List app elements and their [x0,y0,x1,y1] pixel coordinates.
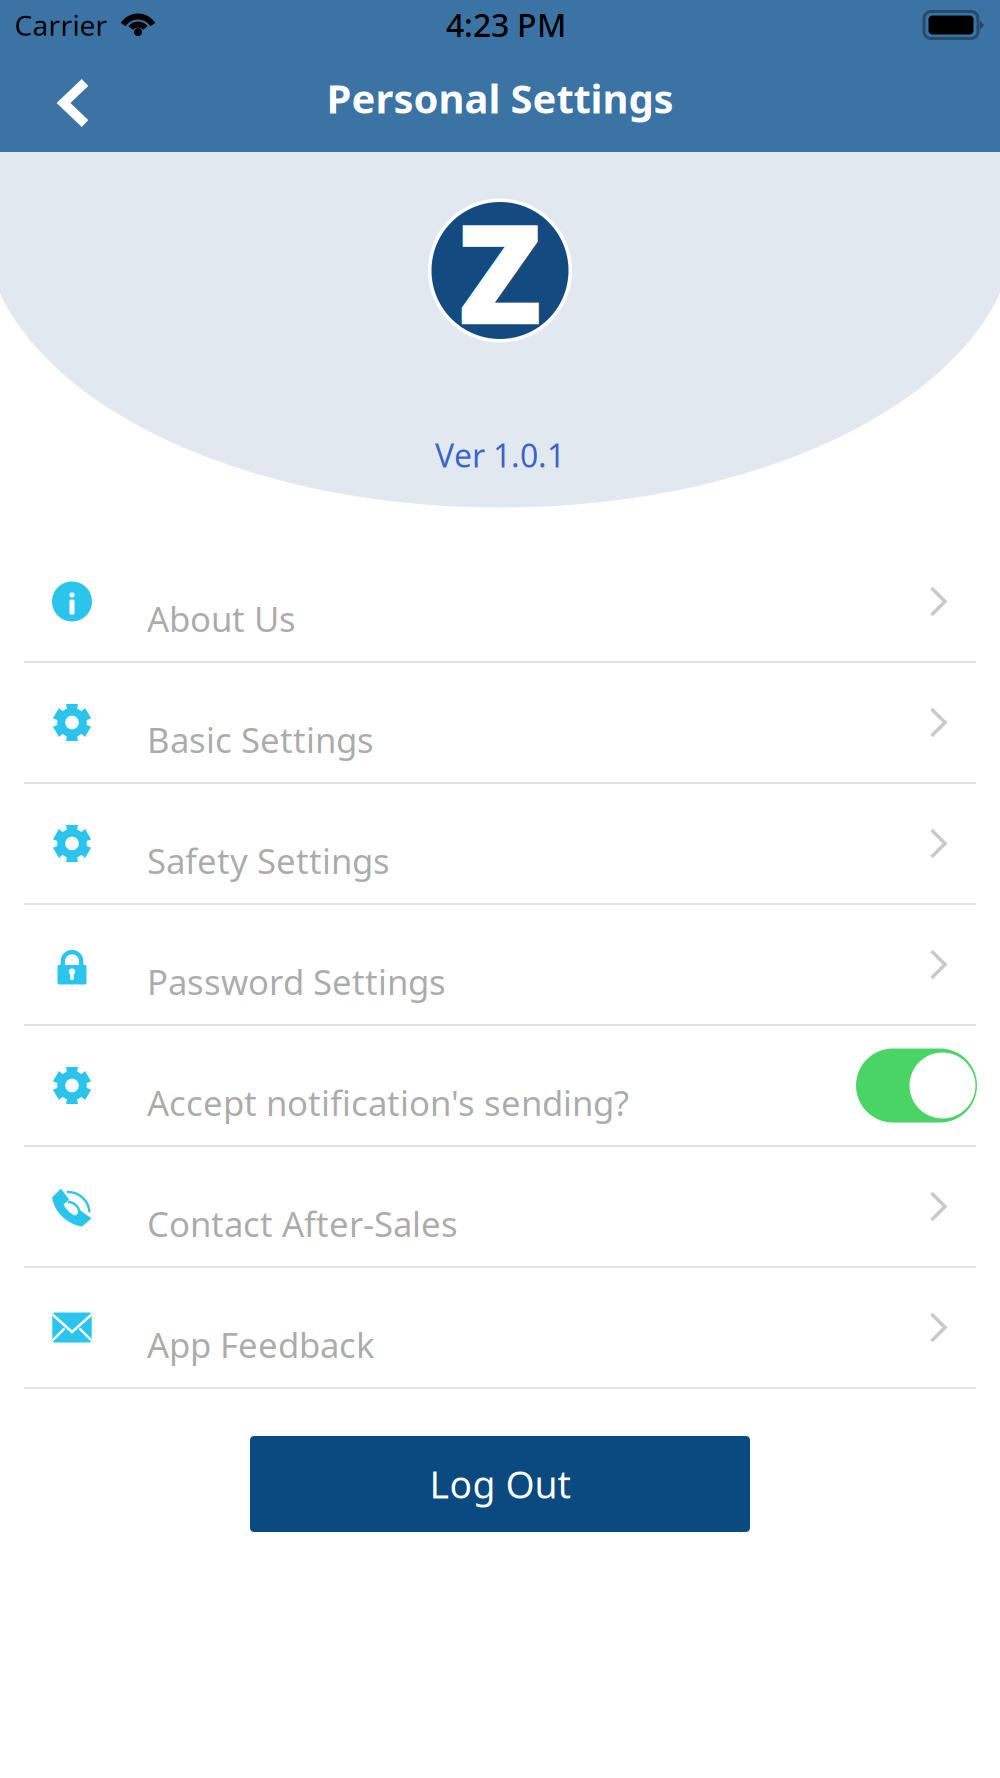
button[interactable]: Safety Settings [0,784,1000,903]
staticText: Safety Settings [147,837,390,883]
button[interactable]: About Us [0,542,1000,661]
button[interactable]: App Feedback [0,1268,1000,1387]
staticText: Log Out [429,1459,570,1509]
button[interactable]: Basic Settings [0,663,1000,782]
button[interactable]: Contact After-Sales [0,1147,1000,1266]
button[interactable]: Accept notification's sending? [0,1026,1000,1145]
staticText: Ver 1.0.1 [435,434,565,476]
staticText: Z [457,178,542,362]
staticText: 4:23 PM [446,3,566,46]
button[interactable]: Log Out [250,1436,750,1532]
button[interactable]: Accept notification's sending [856,1048,977,1122]
button[interactable]: Back [29,53,119,153]
staticText: Basic Settings [147,716,374,762]
button[interactable]: Password Settings [0,905,1000,1024]
staticText: About Us [147,595,296,641]
staticText: Accept notification's sending? [147,1079,629,1125]
staticText: Carrier [14,6,107,44]
staticText: Personal Settings [326,71,673,124]
staticText: Password Settings [147,958,446,1004]
staticText: Contact After-Sales [147,1200,458,1246]
staticText: App Feedback [147,1321,375,1367]
